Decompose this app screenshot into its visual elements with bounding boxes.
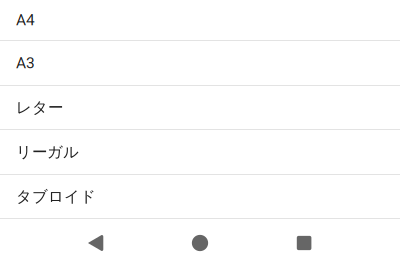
button[interactable]: Back — [72, 219, 120, 267]
button[interactable]: タブロイド — [0, 175, 400, 219]
button[interactable]: Recent apps — [280, 219, 328, 267]
staticText: リーガル — [16, 142, 79, 162]
button[interactable]: A3 — [0, 41, 400, 86]
staticText: A4 — [16, 11, 35, 29]
button[interactable]: Home — [176, 219, 224, 267]
button[interactable]: リーガル — [0, 130, 400, 175]
button[interactable]: A4 — [0, 0, 400, 41]
staticText: レター — [16, 98, 63, 117]
staticText: A3 — [16, 54, 35, 72]
button[interactable]: レター — [0, 86, 400, 130]
staticText: タブロイド — [16, 187, 96, 206]
